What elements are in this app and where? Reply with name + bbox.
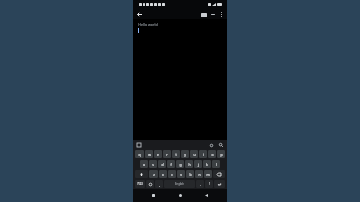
button[interactable]: k <box>203 160 211 168</box>
button[interactable]: Space <box>164 180 195 188</box>
staticText: d <box>161 162 164 167</box>
button[interactable]: Home <box>175 190 186 201</box>
staticText: i <box>203 152 204 157</box>
staticText: ! <box>209 182 210 186</box>
staticText: s <box>152 162 154 167</box>
button[interactable]: i <box>199 150 207 158</box>
button[interactable]: x <box>159 170 167 178</box>
button[interactable]: More options <box>217 10 226 19</box>
staticText: e <box>157 152 159 157</box>
staticText: k <box>206 162 208 167</box>
button[interactable]: l <box>212 160 220 168</box>
button[interactable]: u <box>190 150 198 158</box>
button[interactable]: n <box>195 170 203 178</box>
staticText: Hello world <box>138 22 158 27</box>
button[interactable]: Period <box>196 180 204 188</box>
button[interactable]: Comma <box>155 180 163 188</box>
button[interactable]: Enter <box>214 180 225 188</box>
staticText: q <box>138 152 141 157</box>
staticText: o <box>211 152 214 157</box>
staticText: g <box>179 162 182 167</box>
button[interactable]: o <box>208 150 216 158</box>
button[interactable]: e <box>154 150 162 158</box>
staticText: ?123 <box>137 182 143 186</box>
staticText: b <box>189 172 192 177</box>
button[interactable]: r <box>163 150 171 158</box>
staticText: , <box>159 182 160 187</box>
button[interactable]: Back <box>135 10 144 19</box>
staticText: z <box>153 172 155 177</box>
staticText: t <box>175 152 177 157</box>
button[interactable]: Back <box>201 190 212 201</box>
button[interactable]: b <box>186 170 194 178</box>
button[interactable]: Search <box>218 142 224 148</box>
button[interactable]: Emoji <box>146 180 154 188</box>
button[interactable]: m <box>204 170 212 178</box>
button[interactable]: j <box>194 160 202 168</box>
button[interactable]: z <box>149 170 158 178</box>
button[interactable]: Label <box>199 10 208 19</box>
staticText: f <box>170 162 172 167</box>
staticText: l <box>216 162 217 167</box>
button[interactable]: g <box>176 160 184 168</box>
button[interactable]: Exclamation <box>205 180 213 188</box>
staticText: j <box>198 162 199 167</box>
button[interactable]: Shift <box>135 170 148 178</box>
button[interactable]: t <box>172 150 180 158</box>
button[interactable]: y <box>181 150 189 158</box>
staticText: c <box>171 172 173 177</box>
button[interactable]: f <box>167 160 175 168</box>
staticText: h <box>188 162 191 167</box>
staticText: v <box>180 172 182 177</box>
staticText: r <box>166 152 168 157</box>
button[interactable]: Attach <box>208 10 217 19</box>
staticText: w <box>148 152 151 157</box>
button[interactable]: c <box>168 170 176 178</box>
button[interactable]: p <box>217 150 225 158</box>
button[interactable]: Backspace <box>213 170 225 178</box>
staticText: n <box>198 172 201 177</box>
button[interactable]: d <box>158 160 166 168</box>
button[interactable]: q <box>135 150 144 158</box>
button[interactable]: a <box>140 160 148 168</box>
staticText: u <box>193 152 196 157</box>
staticText: m <box>206 172 210 177</box>
staticText: English <box>175 182 184 186</box>
button[interactable]: Symbols <box>135 180 145 188</box>
button[interactable]: Clipboard <box>136 142 142 148</box>
button[interactable]: Notifications <box>208 142 214 148</box>
staticText: p <box>220 152 223 157</box>
staticText: . <box>200 182 201 187</box>
button[interactable]: v <box>177 170 185 178</box>
button[interactable]: w <box>145 150 153 158</box>
staticText: a <box>143 162 145 167</box>
button[interactable]: s <box>149 160 157 168</box>
button[interactable]: Recents <box>148 190 159 201</box>
staticText: x <box>162 172 164 177</box>
button[interactable]: h <box>185 160 193 168</box>
staticText: y <box>184 152 186 157</box>
